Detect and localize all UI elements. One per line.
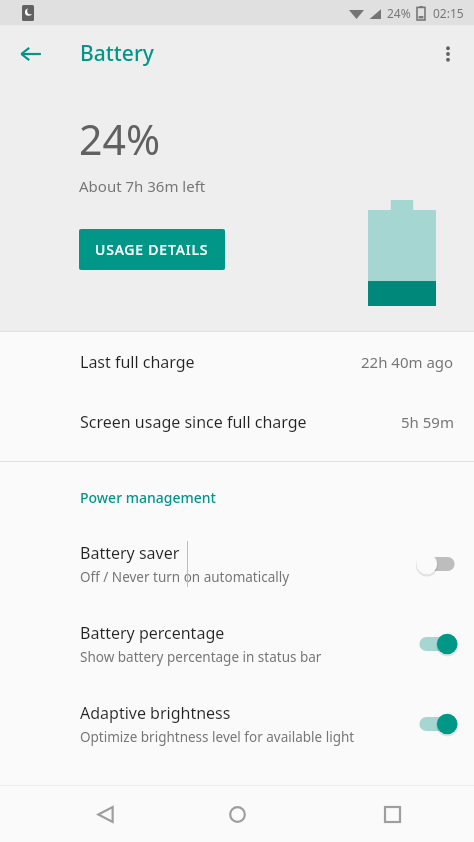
button[interactable]: More options bbox=[424, 30, 472, 78]
staticText: Show battery percentage in status bar bbox=[80, 648, 322, 666]
staticText: 5h 59m bbox=[401, 412, 454, 432]
staticText: USAGE DETAILS bbox=[95, 240, 209, 259]
button[interactable]: Battery saver bbox=[0, 524, 474, 604]
button[interactable]: Battery saver bbox=[410, 542, 464, 586]
staticText: Battery percentage bbox=[80, 622, 225, 644]
button[interactable]: Back bbox=[81, 790, 129, 838]
staticText: Screen usage since full charge bbox=[80, 411, 307, 433]
button[interactable]: Adaptive brightness bbox=[410, 702, 464, 746]
staticText: Last full charge bbox=[80, 351, 195, 373]
button[interactable]: Home bbox=[213, 790, 261, 838]
button[interactable]: Recent apps bbox=[368, 790, 416, 838]
staticText: Optimize brightness level for available … bbox=[80, 728, 355, 746]
button[interactable]: Adaptive brightness bbox=[0, 684, 474, 764]
staticText: Power management bbox=[80, 488, 216, 507]
staticText: Off / Never turn on automatically bbox=[80, 568, 290, 586]
button[interactable]: Battery percentage bbox=[0, 604, 474, 684]
button[interactable]: Back bbox=[7, 30, 55, 78]
staticText: 24% bbox=[79, 111, 160, 167]
staticText: 02:15 bbox=[433, 5, 464, 21]
button[interactable]: Battery percentage bbox=[410, 622, 464, 666]
staticText: 24% bbox=[387, 5, 411, 21]
staticText: Battery bbox=[80, 39, 154, 68]
button[interactable]: Screen usage since full charge bbox=[0, 392, 474, 452]
staticText: Battery saver bbox=[80, 542, 180, 564]
button[interactable]: USAGE DETAILS bbox=[79, 229, 225, 270]
staticText: 22h 40m ago bbox=[361, 352, 454, 372]
staticText: Adaptive brightness bbox=[80, 702, 231, 724]
button[interactable]: Last full charge bbox=[0, 332, 474, 392]
staticText: About 7h 36m left bbox=[79, 176, 206, 196]
